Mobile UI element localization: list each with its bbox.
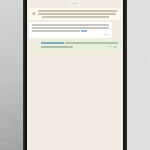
staticText: AYER [72, 2, 78, 5]
staticText: 10:12 [103, 33, 109, 36]
button[interactable]: 10:12 [32, 24, 109, 36]
button[interactable]: Encrypted [32, 10, 118, 18]
button[interactable]: AYER [72, 2, 78, 5]
button[interactable]: 10:14 [41, 42, 118, 48]
other: Encrypted [32, 11, 36, 15]
other: Delivered [114, 45, 118, 48]
staticText: 10:14 [107, 45, 113, 48]
